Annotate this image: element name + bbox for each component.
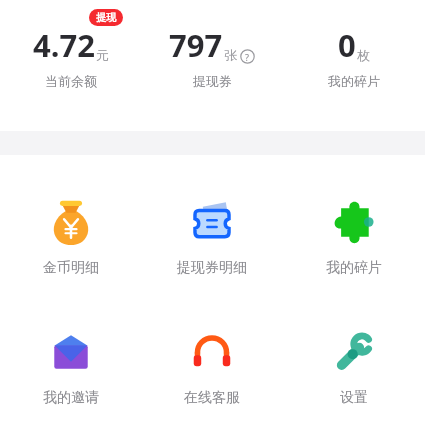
staticText: 0 xyxy=(338,24,356,66)
staticText: ? xyxy=(245,51,250,63)
staticText: 提现券明细 xyxy=(177,259,247,277)
button[interactable]: 我的邀请 xyxy=(0,325,141,409)
staticText: 我的邀请 xyxy=(43,389,99,407)
staticText: 4.72 xyxy=(33,24,95,66)
staticText: 当前余额 xyxy=(45,73,97,89)
staticText: 我的碎片 xyxy=(326,259,382,277)
staticText: 提现 xyxy=(96,11,116,24)
staticText: 我的碎片 xyxy=(328,73,380,89)
button[interactable]: 提现券明细 xyxy=(141,195,283,279)
staticText: 提现券 xyxy=(193,73,232,89)
staticText: 797 xyxy=(169,24,223,66)
button[interactable]: 设置 xyxy=(283,325,425,409)
button[interactable]: 我的碎片 xyxy=(283,195,425,279)
staticText: 设置 xyxy=(340,389,368,407)
button[interactable]: 在线客服 xyxy=(141,325,283,409)
staticText: 枚 xyxy=(357,47,370,63)
button[interactable]: 0 xyxy=(283,24,425,89)
staticText: 在线客服 xyxy=(184,389,240,407)
staticText: 金币明细 xyxy=(43,259,99,277)
button[interactable]: 4.72 xyxy=(0,24,141,89)
button[interactable]: 帮助 xyxy=(240,49,255,64)
staticText: 元 xyxy=(96,47,109,63)
button[interactable]: 797 xyxy=(141,24,283,89)
staticText: 张 xyxy=(224,47,237,63)
button[interactable]: 提现 xyxy=(89,9,123,26)
button[interactable]: 金币明细 xyxy=(0,195,141,279)
